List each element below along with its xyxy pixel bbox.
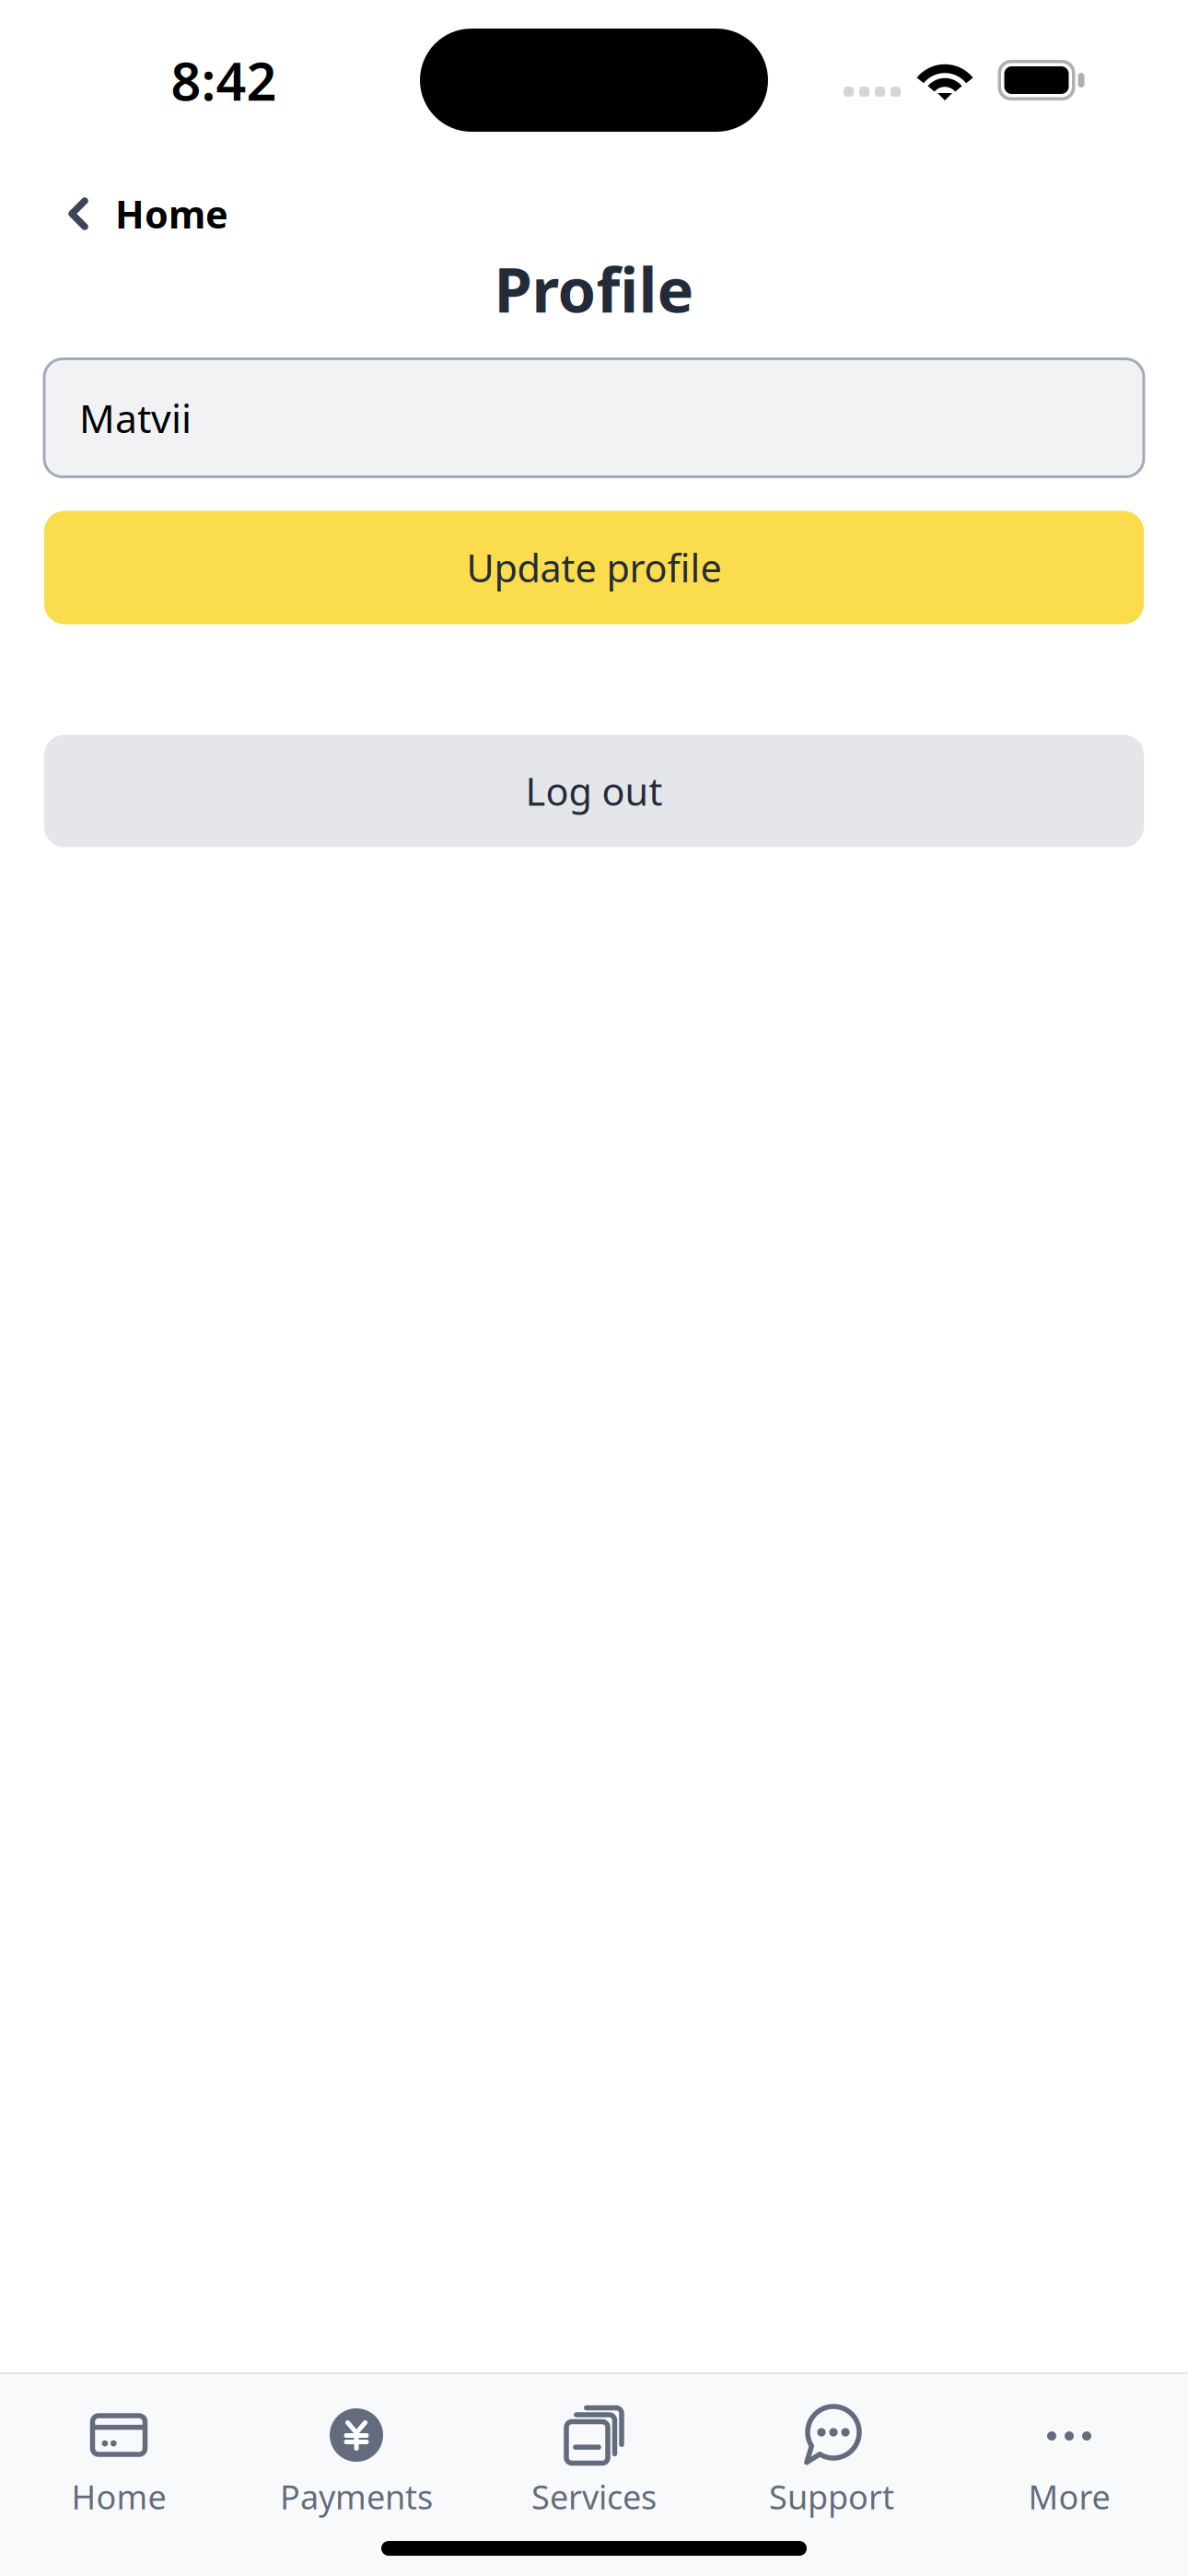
staticText: Matvii bbox=[79, 392, 192, 444]
button[interactable]: Home bbox=[0, 156, 228, 263]
staticText: 8:42 bbox=[171, 45, 277, 115]
staticText: Home bbox=[115, 189, 228, 239]
staticText: More bbox=[1028, 2475, 1110, 2519]
staticText: Payments bbox=[280, 2475, 433, 2519]
staticText: Support bbox=[769, 2475, 894, 2519]
button[interactable]: Home bbox=[0, 2374, 238, 2525]
button[interactable]: Support bbox=[713, 2374, 950, 2525]
button[interactable]: Update profile bbox=[44, 511, 1144, 624]
button[interactable]: More bbox=[950, 2374, 1188, 2525]
staticText: Services bbox=[531, 2475, 657, 2519]
staticText: Home bbox=[71, 2475, 166, 2519]
button[interactable]: Payments bbox=[238, 2374, 475, 2525]
staticText: Update profile bbox=[466, 542, 722, 593]
button[interactable]: Services bbox=[475, 2374, 713, 2525]
staticText: Log out bbox=[525, 766, 663, 816]
button[interactable]: Log out bbox=[44, 735, 1144, 847]
staticText: Profile bbox=[494, 248, 694, 329]
